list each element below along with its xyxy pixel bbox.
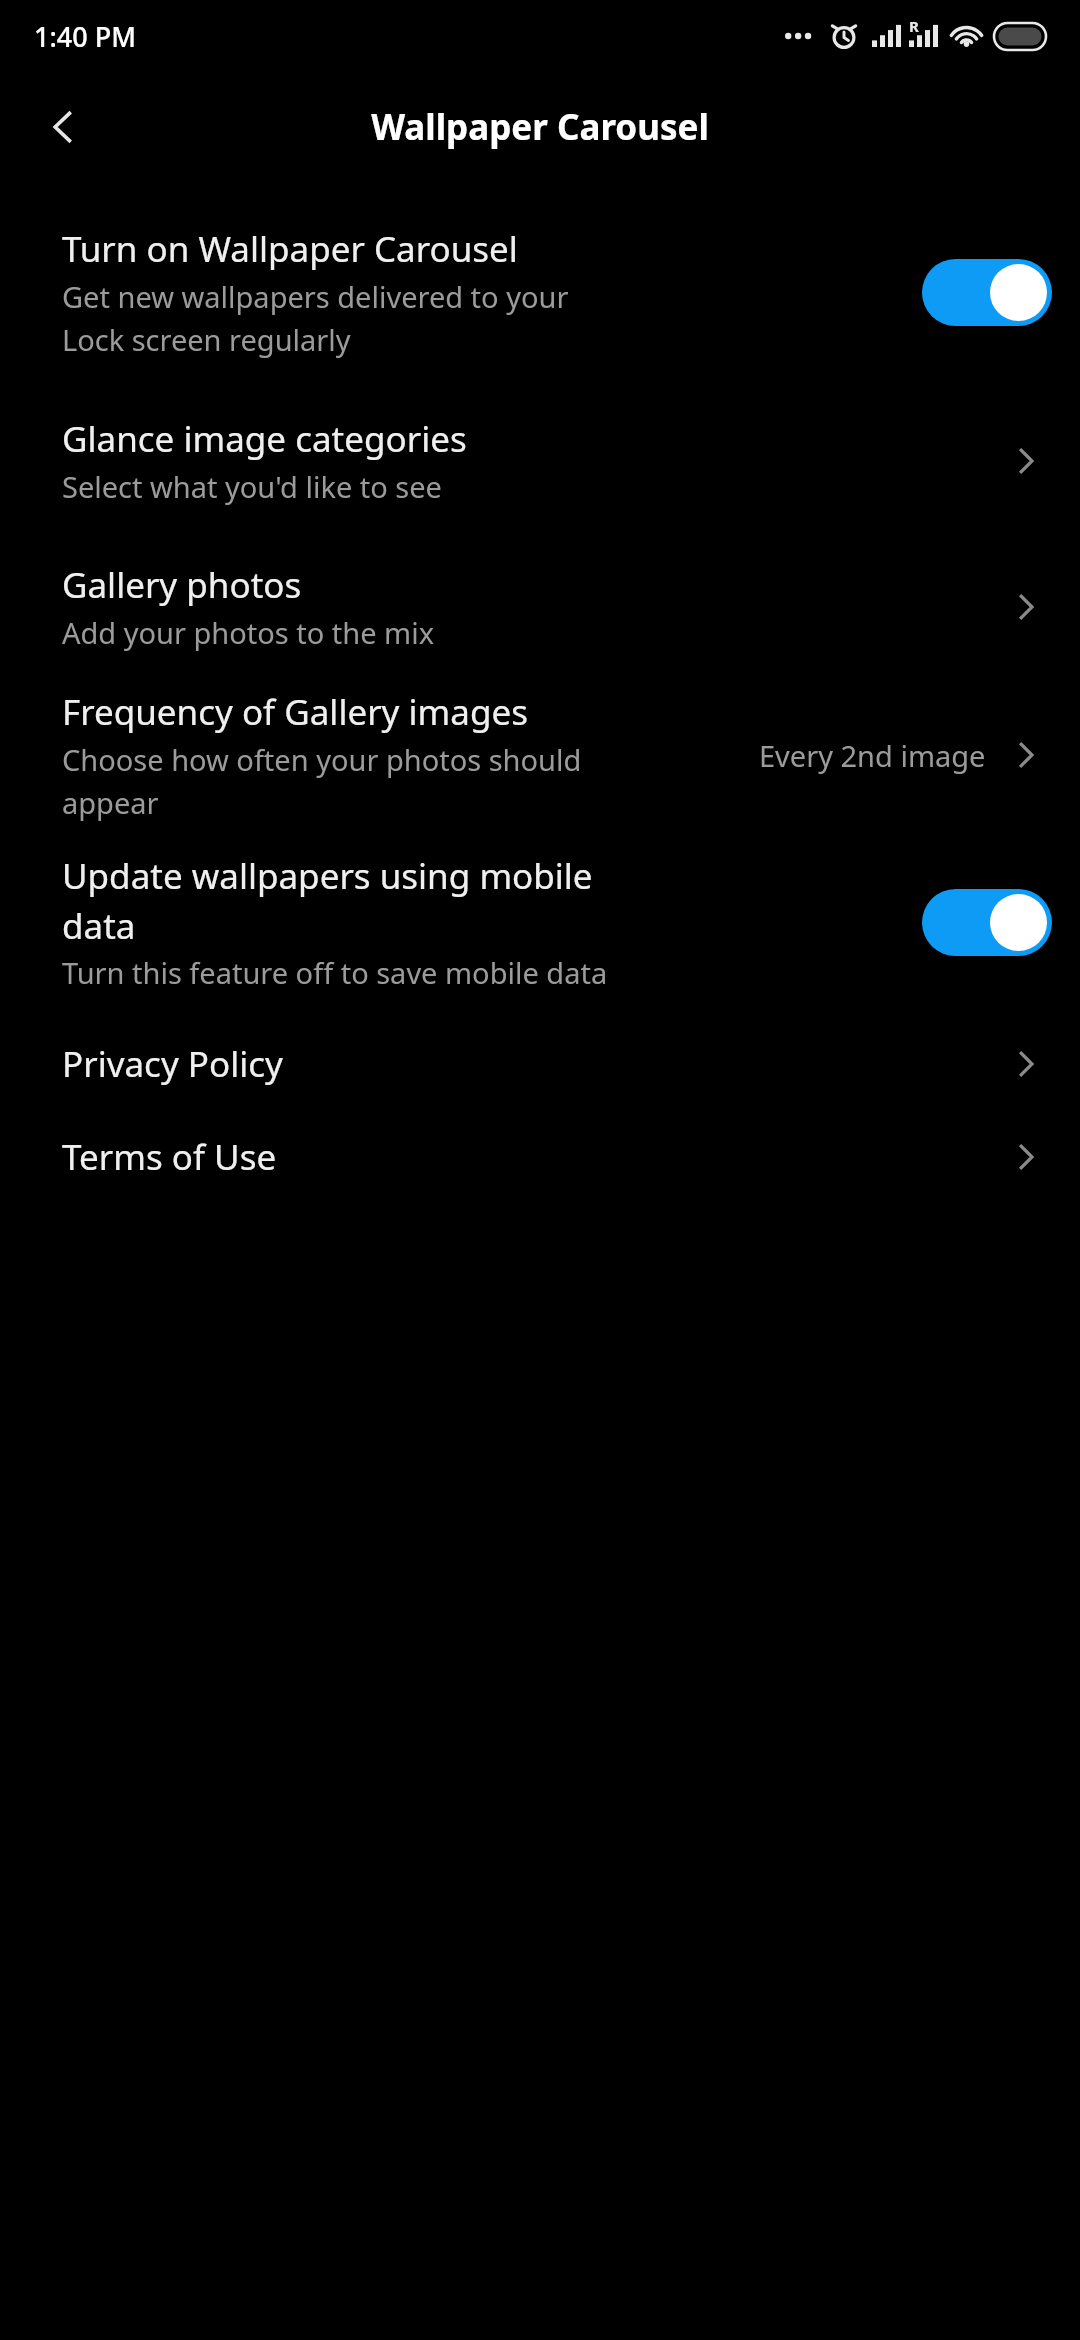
button[interactable]: Update wallpapers using mobile data: [0, 852, 1080, 992]
button[interactable]: Toggle: [922, 889, 1052, 956]
staticText: Choose how often your photos should appe…: [62, 740, 582, 822]
staticText: 1:40 PM: [34, 18, 136, 55]
button[interactable]: Glance image categories: [0, 415, 1080, 506]
button[interactable]: Gallery photos: [0, 561, 1080, 652]
staticText: Gallery photos: [62, 561, 302, 609]
staticText: Every 2nd image: [759, 736, 986, 775]
button[interactable]: Back: [28, 91, 100, 163]
staticText: Turn on Wallpaper Carousel: [62, 225, 518, 273]
staticText: Glance image categories: [62, 415, 467, 463]
button[interactable]: Terms of Use: [0, 1131, 1080, 1183]
staticText: Frequency of Gallery images: [62, 688, 528, 736]
staticText: Terms of Use: [62, 1133, 1000, 1181]
staticText: Add your photos to the mix: [62, 613, 435, 652]
button[interactable]: Frequency of Gallery images: [0, 688, 1080, 822]
staticText: Turn this feature off to save mobile dat…: [62, 953, 608, 992]
button[interactable]: Privacy Policy: [0, 1038, 1080, 1090]
button[interactable]: Toggle: [922, 259, 1052, 326]
staticText: Select what you'd like to see: [62, 467, 442, 506]
button[interactable]: Turn on Wallpaper Carousel: [0, 225, 1080, 359]
staticText: Privacy Policy: [62, 1040, 1000, 1088]
staticText: Get new wallpapers delivered to your Loc…: [62, 277, 569, 359]
staticText: Update wallpapers using mobile data: [62, 852, 593, 949]
staticText: Wallpaper Carousel: [371, 103, 709, 151]
staticText: R: [909, 16, 919, 36]
